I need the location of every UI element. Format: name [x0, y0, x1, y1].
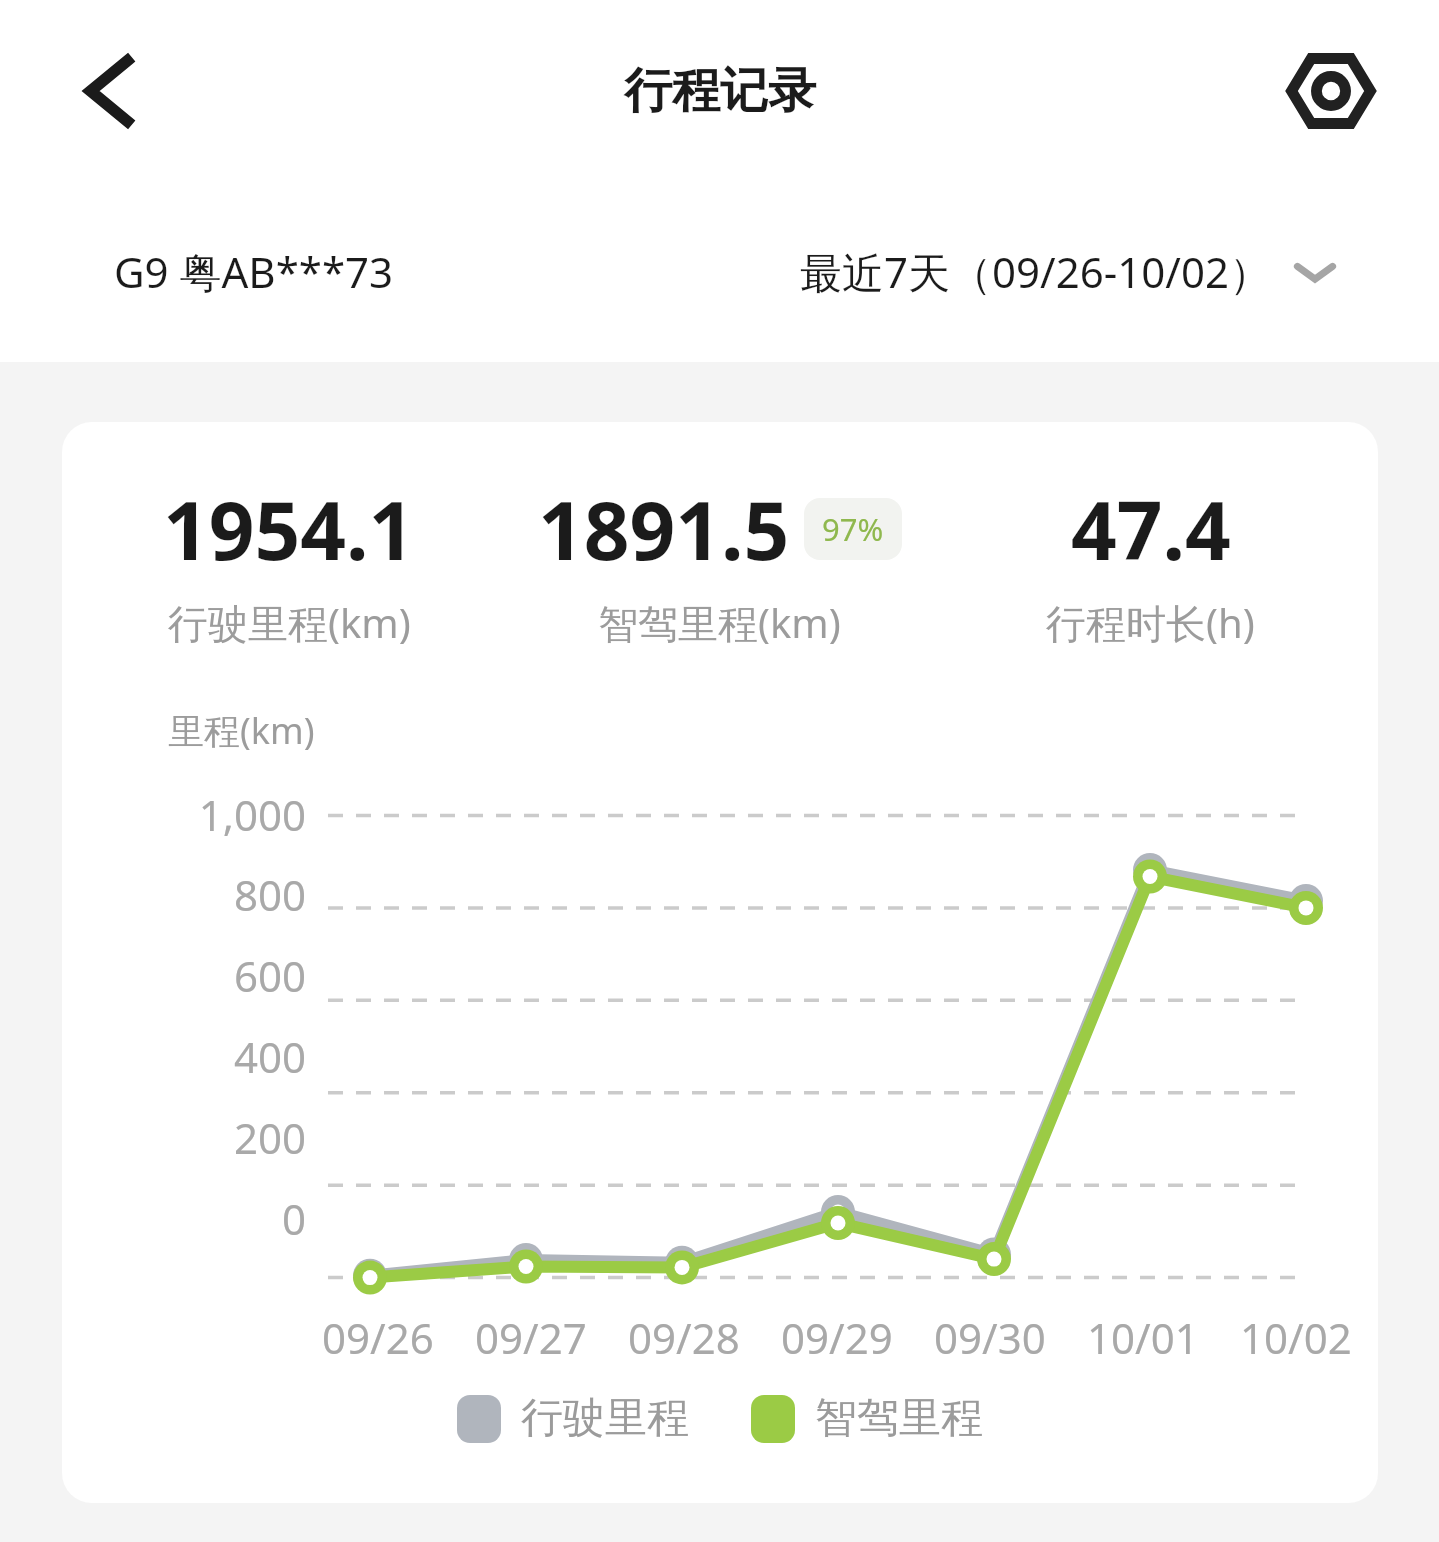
staticText: 1,000: [62, 786, 306, 843]
staticText: 10/01: [1087, 1309, 1199, 1366]
staticText: 行驶里程(km): [168, 595, 411, 650]
staticText: 400: [62, 1028, 306, 1085]
staticText: 200: [62, 1109, 306, 1166]
staticText: 600: [62, 947, 306, 1004]
button[interactable]: Settings: [1275, 35, 1387, 147]
staticText: 09/26: [322, 1309, 434, 1366]
staticText: 里程(km): [168, 706, 315, 755]
staticText: 47.4: [1071, 474, 1231, 583]
staticText: 0: [62, 1190, 306, 1247]
staticText: 1954.1: [163, 474, 415, 583]
staticText: 智驾里程(km): [598, 595, 841, 650]
staticText: 行程时长(h): [1046, 595, 1255, 650]
button[interactable]: 智驾里程: [751, 1392, 983, 1445]
staticText: 09/28: [628, 1309, 740, 1366]
staticText: 1891.5: [538, 474, 790, 583]
button[interactable]: 行驶里程: [457, 1392, 689, 1445]
staticText: 智驾里程: [815, 1392, 983, 1445]
staticText: 09/30: [934, 1309, 1046, 1366]
staticText: 行程记录: [624, 61, 816, 121]
staticText: 行驶里程: [521, 1392, 689, 1445]
button[interactable]: G9 粤AB***73: [114, 243, 394, 300]
staticText: 97%: [822, 508, 884, 550]
button[interactable]: 最近7天（09/26-10/02）: [800, 243, 1335, 300]
button[interactable]: Back: [56, 37, 164, 145]
staticText: 09/29: [781, 1309, 893, 1366]
staticText: 09/27: [475, 1309, 587, 1366]
staticText: 10/02: [1240, 1309, 1352, 1366]
staticText: 最近7天（09/26-10/02）: [800, 243, 1271, 300]
staticText: 800: [62, 866, 306, 923]
